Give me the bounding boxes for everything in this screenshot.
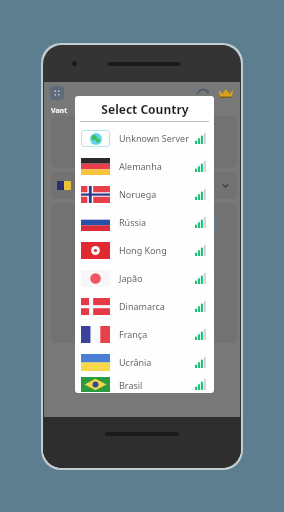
button[interactable]: Unknown Server <box>78 125 211 151</box>
button[interactable]: Brasil <box>78 377 211 392</box>
button[interactable]: Noruega <box>78 181 211 207</box>
button[interactable]: Refresh <box>196 86 210 100</box>
staticText: Dinamarca <box>119 300 165 312</box>
staticText: Select Country <box>101 101 189 117</box>
button[interactable] <box>51 172 237 199</box>
staticText: Japão <box>119 272 143 284</box>
button[interactable]: Alemanha <box>78 153 211 179</box>
button[interactable]: Japão <box>78 265 211 291</box>
staticText: Hong Kong <box>119 244 167 256</box>
staticText: Vant <box>51 106 68 116</box>
button[interactable]: Menu <box>50 86 64 100</box>
button[interactable]: Premium <box>218 87 234 99</box>
button[interactable]: Hong Kong <box>78 237 211 263</box>
staticText: Noruega <box>119 188 157 200</box>
staticText: Rússia <box>119 216 147 228</box>
staticText: França <box>119 328 148 340</box>
button[interactable]: Power <box>194 213 216 231</box>
button[interactable]: Rússia <box>78 209 211 235</box>
button[interactable]: França <box>78 321 211 347</box>
staticText: Alemanha <box>119 160 162 172</box>
button[interactable]: Ucrânia <box>78 349 211 375</box>
staticText: Brasil <box>119 379 143 391</box>
staticText: Unknown Server <box>119 132 189 144</box>
button[interactable]: Dinamarca <box>78 293 211 319</box>
staticText: Ucrânia <box>119 356 152 368</box>
